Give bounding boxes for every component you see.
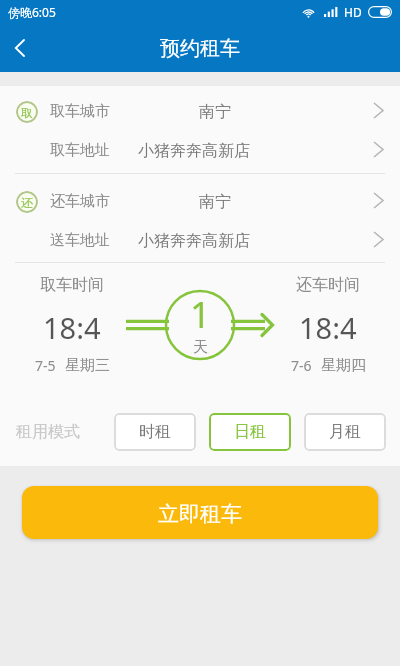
staticText: 时租 (139, 422, 171, 442)
staticText: 月租 (329, 422, 361, 442)
button[interactable]: 取 (0, 92, 400, 131)
staticText: 18:4 (299, 308, 357, 347)
staticText: 日租 (234, 422, 266, 442)
staticText: 南宁 (199, 102, 231, 122)
button[interactable]: 日租 (209, 413, 291, 451)
staticText: HD (344, 4, 362, 20)
button[interactable]: 送车地址 (0, 221, 400, 260)
staticText: 取车城市 (50, 102, 110, 121)
staticText: 租用模式 (16, 422, 80, 442)
staticText: 7-5 (35, 356, 56, 375)
staticText: 小猪奔奔高新店 (138, 231, 250, 251)
staticText: 星期四 (321, 356, 366, 375)
button[interactable]: 月租 (304, 413, 386, 451)
staticText: 天 (193, 338, 208, 357)
staticText: 还车城市 (50, 192, 110, 211)
staticText: 预约租车 (160, 36, 240, 61)
staticText: 立即租车 (158, 501, 242, 527)
staticText: 18:4 (43, 308, 101, 347)
staticText: 傍晚6:05 (8, 4, 56, 20)
staticText: 取车地址 (50, 141, 110, 160)
staticText: 取 (21, 105, 33, 120)
staticText: 7-6 (291, 356, 312, 375)
staticText: 还 (21, 195, 33, 210)
button[interactable]: 立即租车 (22, 486, 378, 539)
button[interactable]: 还 (0, 182, 400, 221)
button[interactable]: Back (0, 29, 38, 67)
staticText: 星期三 (65, 356, 110, 375)
staticText: 还车时间 (296, 275, 360, 295)
staticText: 南宁 (199, 192, 231, 212)
staticText: 1 (190, 290, 211, 339)
staticText: 小猪奔奔高新店 (138, 141, 250, 161)
button[interactable]: 时租 (114, 413, 196, 451)
button[interactable]: 取车地址 (0, 131, 400, 170)
staticText: 送车地址 (50, 231, 110, 250)
staticText: 取车时间 (40, 275, 104, 295)
